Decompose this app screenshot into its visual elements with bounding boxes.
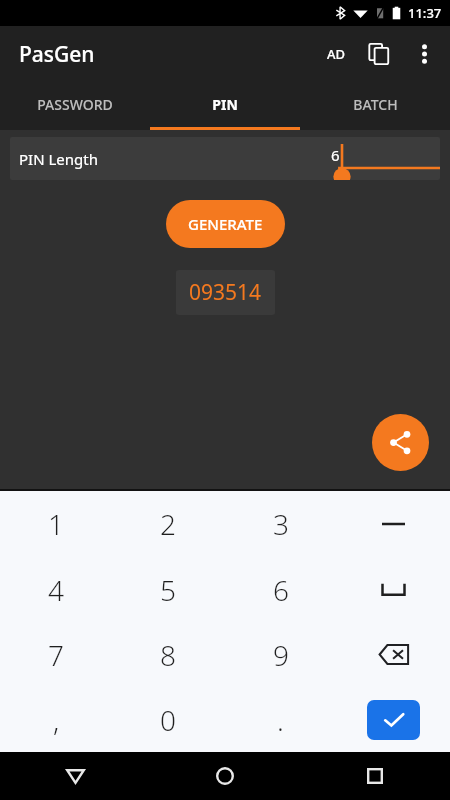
button[interactable]: 093514 — [176, 270, 275, 315]
button[interactable]: 1 — [0, 491, 112, 557]
staticText: 0 — [160, 701, 176, 739]
button[interactable]: Home — [150, 752, 300, 800]
button[interactable]: PASSWORD — [0, 82, 150, 127]
button[interactable]: 4 — [0, 557, 112, 622]
button[interactable]: 8 — [112, 622, 224, 687]
button[interactable]: , — [0, 687, 112, 752]
staticText: 4 — [48, 571, 64, 609]
button[interactable]: 3 — [224, 491, 337, 557]
staticText: 5 — [160, 571, 176, 609]
button[interactable]: Share — [372, 414, 429, 471]
staticText: . — [277, 701, 284, 739]
staticText: 7 — [48, 636, 64, 674]
button[interactable]: PIN Length — [10, 137, 440, 180]
button[interactable]: . — [224, 687, 337, 752]
button[interactable]: 5 — [112, 557, 224, 622]
staticText: PIN Length — [19, 149, 98, 169]
staticText: PasGen — [19, 40, 95, 69]
staticText: 093514 — [189, 278, 262, 307]
button[interactable]: Back — [0, 752, 150, 800]
button[interactable]: 9 — [224, 622, 337, 687]
staticText: 3 — [273, 505, 289, 543]
staticText: 11:37 — [408, 4, 442, 22]
staticText: , — [53, 701, 60, 739]
button[interactable]: 2 — [112, 491, 224, 557]
staticText: 1 — [48, 505, 64, 543]
staticText: GENERATE — [188, 214, 263, 234]
button[interactable]: Copy — [356, 31, 402, 77]
button[interactable]: Backspace — [337, 622, 450, 687]
button[interactable]: 7 — [0, 622, 112, 687]
staticText: 6 — [273, 571, 289, 609]
staticText: AD — [327, 45, 346, 63]
button[interactable]: BATCH — [300, 82, 450, 127]
staticText: PIN — [212, 95, 238, 114]
button[interactable]: GENERATE — [166, 200, 285, 248]
staticText: 8 — [160, 636, 176, 674]
button[interactable]: 6 — [224, 557, 337, 622]
staticText: BATCH — [353, 95, 398, 114]
staticText: PASSWORD — [37, 95, 113, 114]
button[interactable]: Space — [337, 557, 450, 622]
button[interactable]: Enter — [367, 700, 420, 740]
button[interactable]: 0 — [112, 687, 224, 752]
staticText: 9 — [273, 636, 289, 674]
staticText: 6 — [331, 145, 340, 165]
button[interactable]: More options — [402, 32, 446, 76]
button[interactable]: AD — [316, 34, 356, 74]
button[interactable]: Minus — [337, 491, 450, 557]
button[interactable]: PIN — [150, 82, 300, 127]
button[interactable]: Recents — [300, 752, 450, 800]
staticText: 2 — [160, 505, 176, 543]
